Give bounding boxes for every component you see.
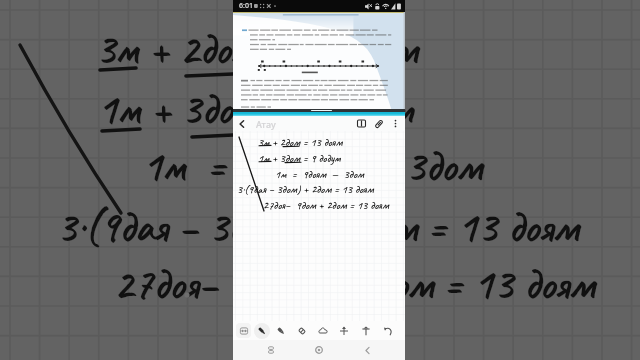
- staticText: 27доя– 9дом + 2дом = 13 доям: [263, 198, 389, 212]
- button[interactable]: Attach: [370, 116, 388, 131]
- staticText: 1м + 3дом = 9 додум: [258, 151, 341, 165]
- staticText: 3м + 2дом = 13 доям: [96, 22, 418, 77]
- button[interactable]: More options: [388, 116, 403, 131]
- staticText: 1м + 3дом = 9 додум: [98, 82, 413, 137]
- button[interactable]: Shapes: [333, 321, 355, 340]
- staticText: 27доя– 9дом + 2дом = 13 доям: [113, 256, 594, 311]
- staticText: 1м + 3дом = 9 додум: [258, 151, 341, 165]
- button[interactable]: Highlighter: [270, 321, 291, 340]
- button[interactable]: Recents: [261, 340, 281, 360]
- staticText: 3м + 2дом = 13 доям: [258, 135, 343, 149]
- staticText: 3·(9дая – 3дом) + 2дом = 13 доям: [237, 182, 374, 196]
- staticText: 3·(9дая – 3дом) + 2дом = 13 доям: [56, 199, 578, 254]
- staticText: 27доя– 9дом + 2дом = 13 доям: [263, 198, 389, 212]
- button[interactable]: Reading view: [352, 116, 370, 131]
- staticText: Атау: [256, 118, 276, 130]
- staticText: 1м + 3дом = 9 додум: [97, 81, 412, 136]
- staticText: 6:01: [239, 1, 253, 11]
- staticText: 3·(9дая – 3дом) + 2дом = 13 доям: [237, 182, 374, 196]
- button[interactable]: Undo: [377, 321, 399, 340]
- staticText: 3·(9дая – 3дом) + 2дом = 13 доям: [57, 200, 579, 255]
- staticText: 1м = 9доям — 3дом: [142, 138, 482, 193]
- staticText: 27доя– 9дом + 2дом = 13 доям: [114, 257, 595, 312]
- button[interactable]: Text: [355, 321, 377, 340]
- button[interactable]: Pen: [254, 323, 270, 339]
- staticText: 1м = 9доям — 3дом: [275, 167, 364, 181]
- button[interactable]: Home: [309, 340, 329, 360]
- button[interactable]: Back: [233, 116, 251, 131]
- staticText: 3м + 2дом = 13 доям: [258, 135, 343, 149]
- button[interactable]: Select: [312, 321, 333, 340]
- button[interactable]: All tools: [236, 323, 251, 338]
- staticText: 1м = 9доям — 3дом: [143, 139, 483, 194]
- button[interactable]: Eraser: [291, 321, 312, 340]
- staticText: 3м + 2дом = 13 доям: [95, 21, 417, 76]
- button[interactable]: Back: [357, 340, 377, 360]
- staticText: 1м = 9доям — 3дом: [275, 167, 364, 181]
